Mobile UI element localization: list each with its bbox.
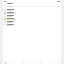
button[interactable] bbox=[3, 23, 61, 26]
button[interactable]: Open navigation menu bbox=[4, 3, 6, 5]
button[interactable] bbox=[3, 11, 61, 14]
button[interactable] bbox=[3, 14, 61, 17]
button[interactable] bbox=[3, 17, 61, 20]
button[interactable] bbox=[3, 8, 61, 11]
button[interactable]: Search bbox=[4, 6, 60, 7]
button[interactable] bbox=[3, 20, 61, 23]
button[interactable]: Profile bbox=[57, 61, 60, 64]
button[interactable]: Search bbox=[22, 61, 25, 64]
button[interactable]: Home bbox=[4, 61, 7, 64]
button[interactable]: Library bbox=[39, 61, 42, 64]
